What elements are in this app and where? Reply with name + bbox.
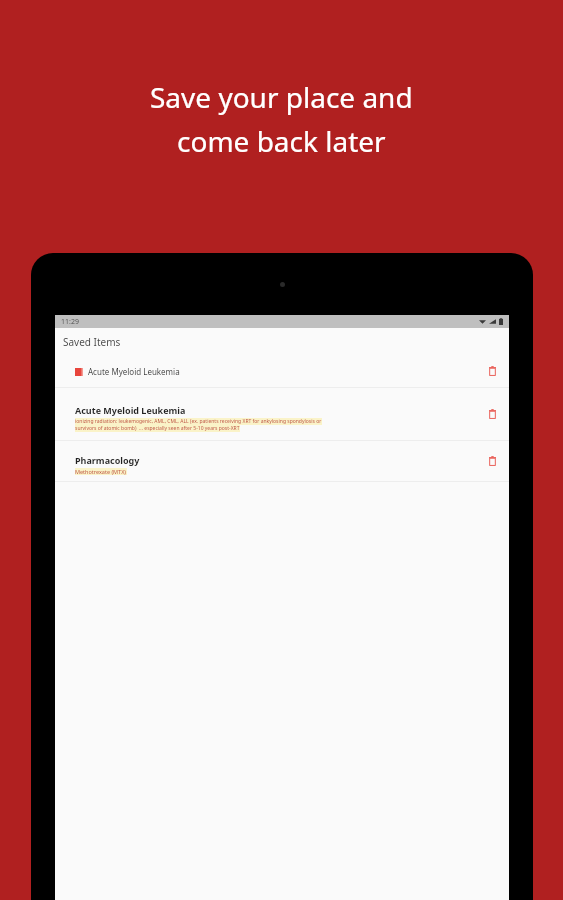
- staticText: 11:29: [61, 317, 79, 327]
- button[interactable]: Delete: [475, 441, 509, 481]
- staticText: Saved Items: [63, 335, 121, 349]
- button[interactable]: Delete: [475, 355, 509, 387]
- button[interactable]: Acute Myeloid Leukemia: [55, 355, 509, 387]
- staticText: come back later: [177, 122, 386, 160]
- staticText: Acute Myeloid Leukemia: [88, 366, 180, 377]
- staticText: Pharmacology: [75, 454, 140, 466]
- staticText: Acute Myeloid Leukemia: [75, 404, 186, 416]
- button[interactable]: Pharmacology: [55, 441, 509, 481]
- button[interactable]: Delete: [475, 388, 509, 440]
- staticText: Save your place and: [150, 78, 413, 116]
- staticText: Methotrexate (MTX): [75, 468, 127, 475]
- staticText: survivors of atomic bomb) ... especially…: [75, 425, 240, 432]
- staticText: ionizing radiation: leukemogenic, AML, C…: [75, 418, 322, 425]
- button[interactable]: Acute Myeloid Leukemia: [55, 388, 509, 440]
